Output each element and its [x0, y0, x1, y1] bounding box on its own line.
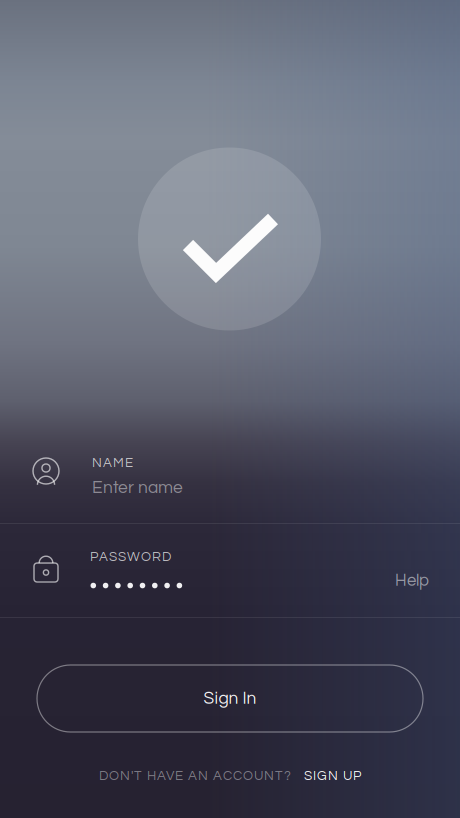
- button[interactable]: SIGN UP: [291, 762, 361, 790]
- staticText: PASSWORD: [90, 550, 171, 564]
- button[interactable]: NAME: [0, 430, 460, 523]
- staticText: Enter name: [92, 479, 183, 497]
- staticText: DON'T HAVE AN ACCOUNT?: [99, 769, 291, 783]
- staticText: NAME: [92, 456, 133, 470]
- staticText: Sign In: [203, 690, 256, 707]
- button[interactable]: Sign In: [37, 665, 423, 732]
- staticText: SIGN UP: [304, 769, 361, 783]
- button[interactable]: Help: [381, 562, 443, 599]
- staticText: Help: [395, 572, 429, 589]
